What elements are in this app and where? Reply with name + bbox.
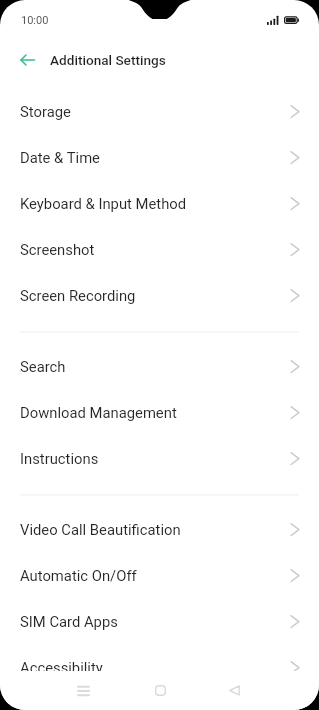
staticText: Video Call Beautification — [20, 521, 181, 538]
staticText: Automatic On/Off — [20, 567, 137, 584]
button[interactable]: Video Call Beautification — [0, 506, 319, 552]
staticText: 10:00 — [21, 14, 49, 27]
button[interactable]: Back — [209, 671, 259, 710]
button[interactable]: Back — [13, 45, 42, 74]
button[interactable]: Search — [0, 343, 319, 389]
staticText: Accessibility — [20, 659, 103, 671]
staticText: SIM Card Apps — [20, 613, 118, 630]
staticText: Screen Recording — [20, 287, 136, 304]
button[interactable]: Screen Recording — [0, 272, 319, 318]
button[interactable]: Screenshot — [0, 226, 319, 272]
staticText: Additional Settings — [50, 52, 166, 68]
staticText: Storage — [20, 103, 71, 120]
staticText: Date & Time — [20, 149, 100, 166]
staticText: Search — [20, 358, 66, 375]
staticText: Keyboard & Input Method — [20, 195, 187, 212]
button[interactable]: Recent apps — [58, 671, 108, 710]
button[interactable]: Accessibility — [0, 644, 319, 671]
button[interactable]: Instructions — [0, 435, 319, 481]
button[interactable]: Keyboard & Input Method — [0, 180, 319, 226]
staticText: Instructions — [20, 450, 99, 467]
button[interactable]: Date & Time — [0, 134, 319, 180]
staticText: Download Management — [20, 404, 177, 421]
button[interactable]: Automatic On/Off — [0, 552, 319, 598]
button[interactable]: Home — [135, 671, 185, 710]
button[interactable]: Storage — [0, 88, 319, 134]
button[interactable]: SIM Card Apps — [0, 598, 319, 644]
staticText: Screenshot — [20, 241, 95, 258]
button[interactable]: Download Management — [0, 389, 319, 435]
